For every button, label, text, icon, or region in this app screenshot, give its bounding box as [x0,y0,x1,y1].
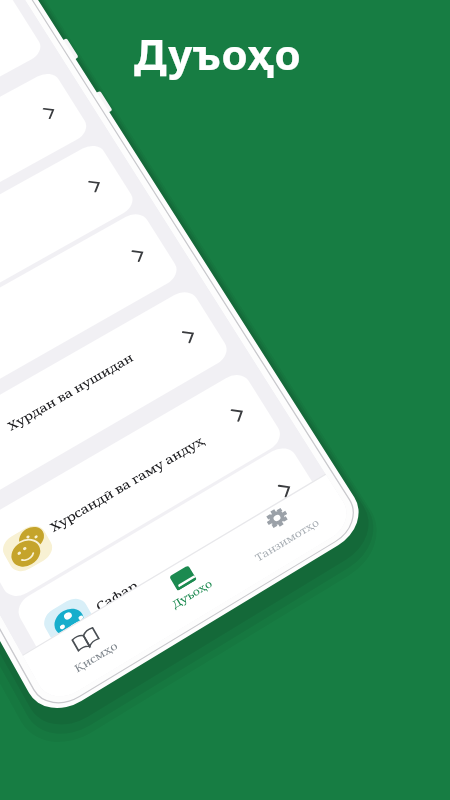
button[interactable] [0,0,450,800]
